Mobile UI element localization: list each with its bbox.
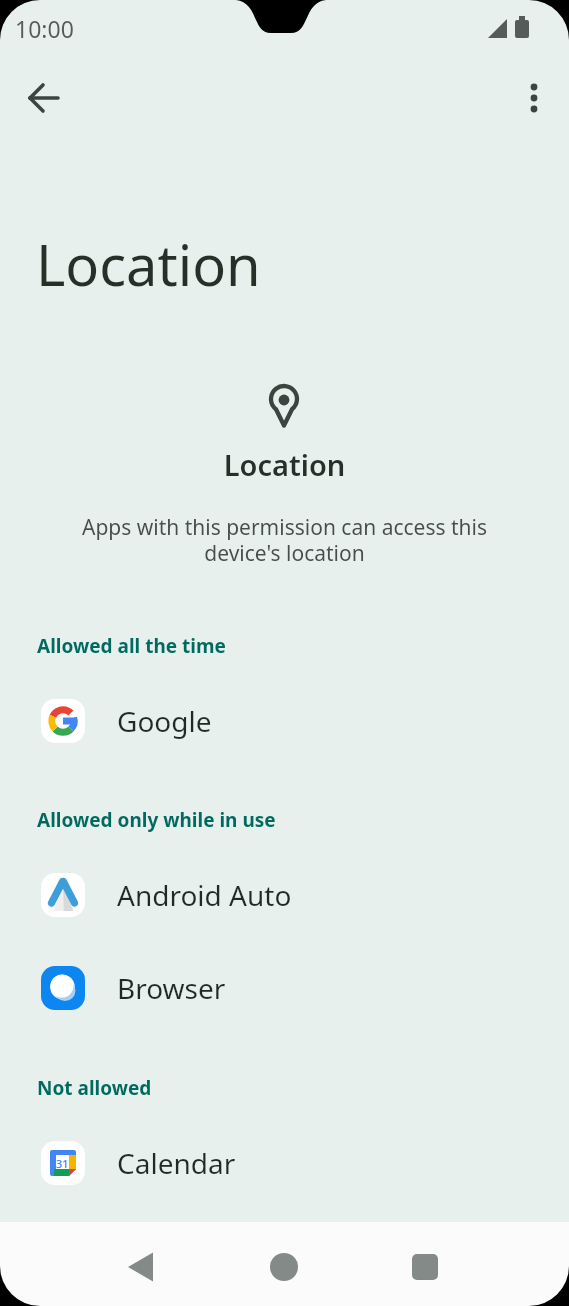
- button[interactable]: [20, 74, 68, 122]
- button[interactable]: [510, 74, 558, 122]
- button[interactable]: [117, 1243, 165, 1291]
- button[interactable]: [260, 1243, 308, 1291]
- staticText: Location: [0, 445, 569, 484]
- staticText: Not allowed: [37, 1075, 152, 1101]
- button[interactable]: 31: [0, 1119, 569, 1207]
- staticText: 31: [56, 1156, 69, 1171]
- staticText: Allowed all the time: [37, 633, 226, 659]
- staticText: Apps with this permission can access thi…: [0, 513, 569, 568]
- staticText: Google: [117, 702, 212, 740]
- button[interactable]: Android Auto: [0, 851, 569, 939]
- button[interactable]: Browser: [0, 944, 569, 1032]
- staticText: 10:00: [15, 13, 74, 44]
- staticText: Location: [36, 226, 261, 302]
- button[interactable]: Google: [0, 677, 569, 765]
- staticText: Android Auto: [117, 876, 292, 914]
- button[interactable]: [401, 1243, 449, 1291]
- staticText: Calendar: [117, 1144, 236, 1182]
- staticText: Allowed only while in use: [37, 807, 276, 833]
- staticText: Browser: [117, 969, 226, 1007]
